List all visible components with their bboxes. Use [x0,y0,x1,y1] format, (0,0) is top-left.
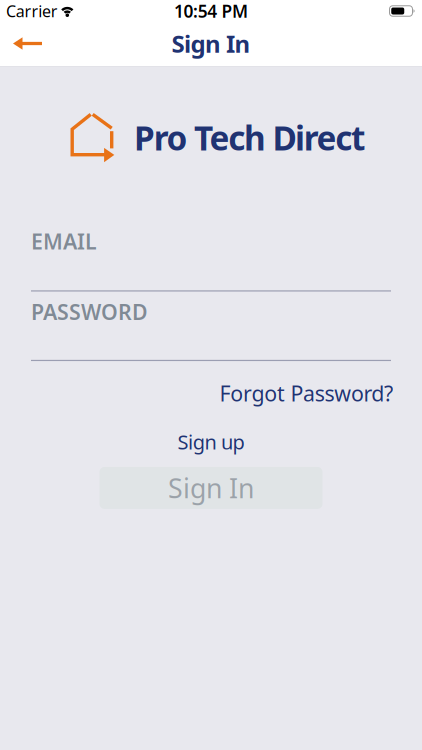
staticText: EMAIL [31,227,97,255]
staticText: Pro Tech Direct [134,115,365,160]
button[interactable]: Password [0,297,422,361]
button[interactable]: Back [0,31,42,59]
staticText: Sign In [168,470,254,506]
staticText: PASSWORD [31,297,148,326]
button[interactable]: Sign up [177,428,245,455]
button[interactable]: Sign In [99,467,322,509]
staticText: Forgot Password? [219,379,393,407]
button[interactable]: Forgot Password? [219,379,393,407]
button[interactable]: Email [0,227,422,291]
staticText: Carrier [6,0,58,22]
staticText: Sign up [177,428,245,455]
staticText: Sign In [171,28,250,59]
staticText: 10:54 PM [174,0,248,22]
